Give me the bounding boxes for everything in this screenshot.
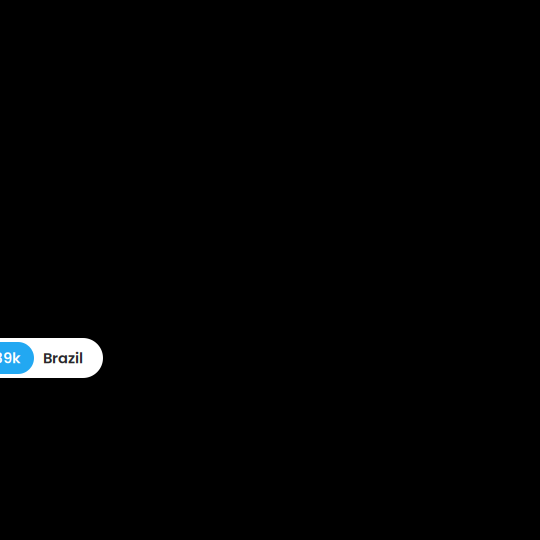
staticText: 139k [0, 348, 21, 368]
staticText: Brazil [43, 348, 83, 368]
button[interactable]: 139k [0, 338, 103, 378]
